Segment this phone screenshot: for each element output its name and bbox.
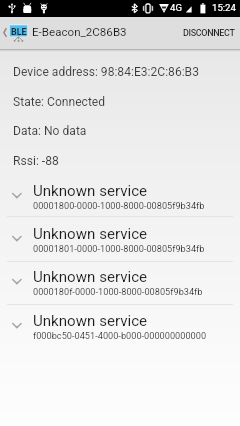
staticText: 15:24 bbox=[212, 2, 236, 13]
staticText: Unknown service bbox=[33, 268, 148, 286]
button[interactable]: Unknown service bbox=[0, 261, 240, 303]
staticText: BLE bbox=[11, 27, 27, 38]
staticText: 00001801-0000-1000-8000-00805f9b34fb bbox=[33, 243, 205, 254]
staticText: Unknown service bbox=[33, 182, 148, 200]
button[interactable]: DISCONNECT bbox=[178, 17, 240, 49]
staticText: E-Beacon_2C86B3 bbox=[32, 25, 127, 39]
staticText: Rssi: -88 bbox=[13, 154, 59, 168]
button[interactable]: Unknown service bbox=[0, 175, 240, 217]
staticText: State: Connected bbox=[13, 95, 106, 109]
button[interactable]: Back bbox=[0, 17, 9, 49]
staticText: f000bc50-0451-4000-b000-000000000000 bbox=[33, 330, 207, 341]
staticText: DISCONNECT bbox=[183, 28, 235, 39]
staticText: 00001800-0000-1000-8000-00805f9b34fb bbox=[33, 200, 205, 211]
staticText: Device address: 98:84:E3:2C:86:B3 bbox=[13, 65, 199, 79]
button[interactable]: Unknown service bbox=[0, 305, 240, 347]
staticText: Unknown service bbox=[33, 225, 148, 243]
staticText: 0000180f-0000-1000-8000-00805f9b34fb bbox=[33, 286, 203, 297]
staticText: 4G bbox=[170, 2, 182, 13]
button[interactable]: Unknown service bbox=[0, 218, 240, 260]
staticText: Data: No data bbox=[13, 124, 87, 138]
staticText: Unknown service bbox=[33, 312, 148, 330]
